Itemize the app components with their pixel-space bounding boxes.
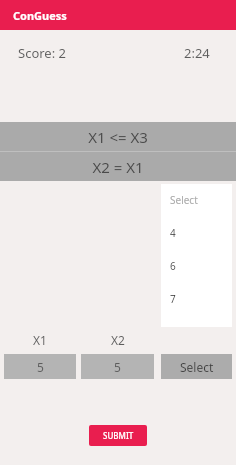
staticText: Select xyxy=(180,359,214,375)
staticText: Score: 2 xyxy=(18,44,66,62)
button[interactable]: SUBMIT xyxy=(89,425,147,446)
button[interactable]: 4 xyxy=(161,207,232,240)
button[interactable]: Select xyxy=(161,354,232,379)
button[interactable]: Select xyxy=(161,184,232,207)
button[interactable]: 5 xyxy=(81,354,154,379)
staticText: X1 <= X3 xyxy=(88,127,148,147)
staticText: Select xyxy=(170,193,198,207)
button[interactable]: 7 xyxy=(161,273,232,306)
staticText: X2 = X1 xyxy=(92,157,144,177)
button[interactable]: X2 = X1 xyxy=(0,152,236,181)
staticText: 5 xyxy=(37,359,44,375)
staticText: X2 xyxy=(111,332,125,348)
other: Value options xyxy=(161,184,232,327)
staticText: 6 xyxy=(170,259,176,273)
button[interactable]: X1 <= X3 xyxy=(0,122,236,151)
button[interactable]: 5 xyxy=(4,354,76,379)
staticText: SUBMIT xyxy=(103,430,134,441)
staticText: 2:24 xyxy=(184,44,210,62)
staticText: X1 xyxy=(33,332,47,348)
staticText: 5 xyxy=(114,359,121,375)
staticText: 4 xyxy=(170,226,176,240)
staticText: 7 xyxy=(170,292,176,306)
button[interactable]: 6 xyxy=(161,240,232,273)
staticText: ConGuess xyxy=(13,8,67,23)
